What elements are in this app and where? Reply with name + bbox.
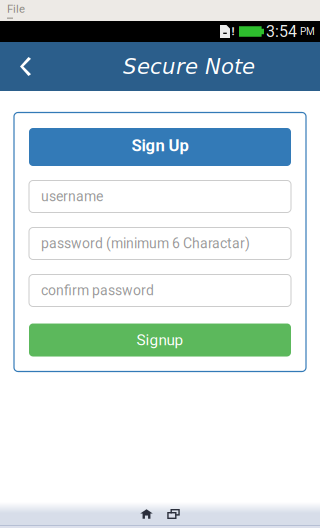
staticText: Sign Up (131, 136, 188, 155)
staticText: confirm password (41, 282, 154, 299)
staticText: Secure Note (123, 54, 255, 79)
staticText: username (41, 188, 103, 205)
button[interactable]: confirm password (29, 274, 291, 306)
staticText: 3:54 (266, 22, 297, 41)
staticText: File (7, 2, 25, 16)
button[interactable]: Recent apps (161, 503, 186, 525)
staticText: Signup (136, 331, 183, 349)
button[interactable]: Home (134, 503, 159, 525)
staticText: PM (300, 26, 315, 37)
button[interactable]: Sign Up (29, 128, 291, 166)
button[interactable]: username (29, 180, 291, 212)
button[interactable]: Back (0, 42, 47, 91)
button[interactable]: Signup (29, 323, 291, 356)
staticText: password (minimum 6 Charactar) (41, 235, 250, 252)
button[interactable]: File (0, 0, 35, 21)
button[interactable]: password (minimum 6 Charactar) (29, 227, 291, 259)
staticText: ! (231, 25, 234, 38)
